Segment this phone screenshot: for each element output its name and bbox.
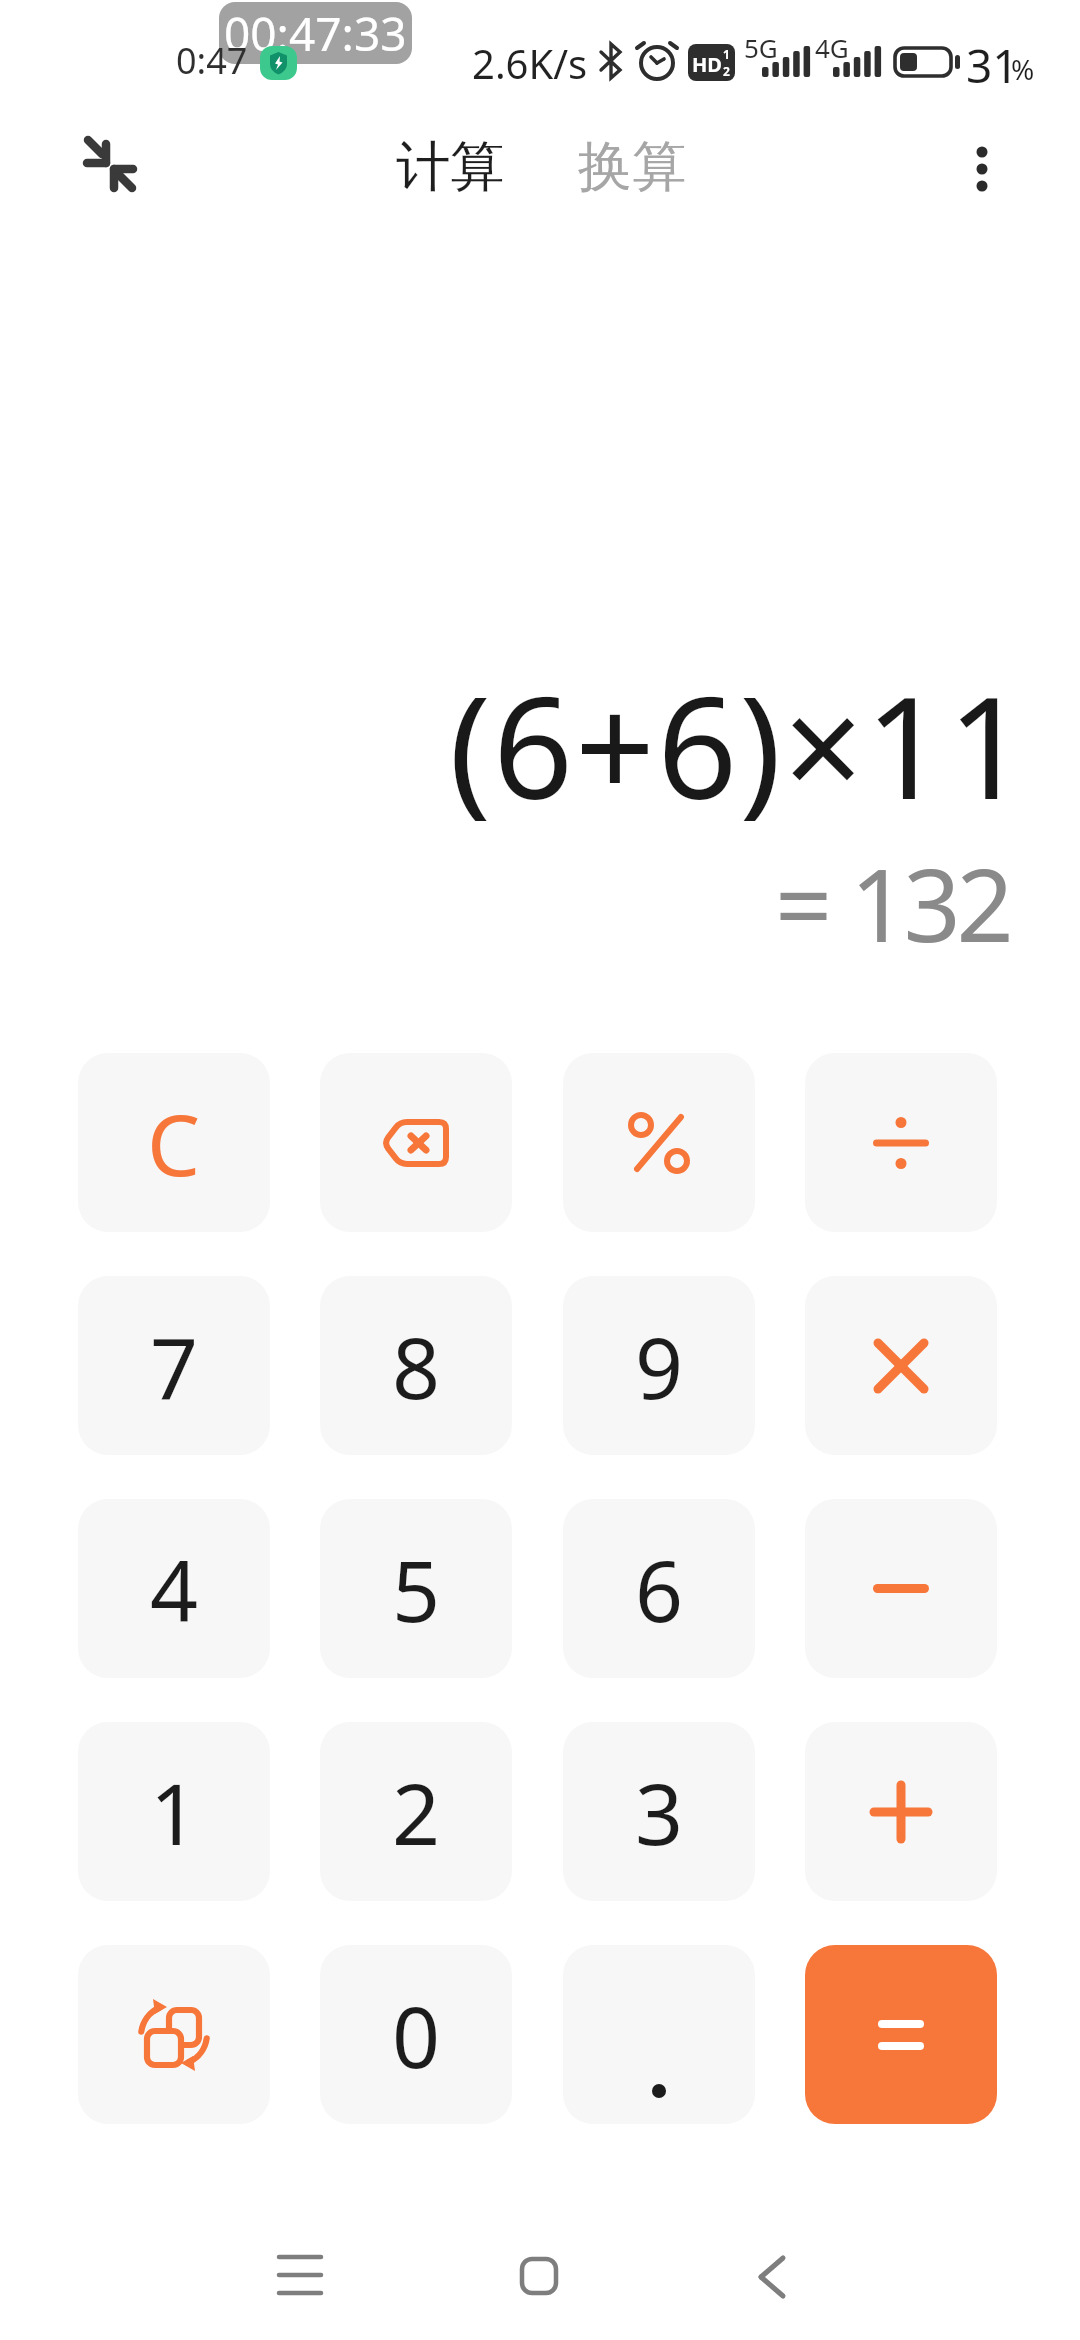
button[interactable]: 5 — [320, 1499, 512, 1678]
button[interactable]: 换算 — [562, 125, 702, 209]
button[interactable] — [563, 1945, 755, 2124]
button[interactable] — [805, 1053, 997, 1232]
staticText: 5G — [744, 30, 778, 65]
staticText: 换算 — [578, 133, 686, 201]
button[interactable] — [72, 122, 152, 202]
staticText: 00:47:33 — [224, 2, 407, 64]
staticText: 8 — [392, 1309, 441, 1423]
button[interactable]: 8 — [320, 1276, 512, 1455]
button[interactable] — [805, 1722, 997, 1901]
staticText: 31 — [966, 34, 1019, 97]
staticText: 计算 — [396, 133, 504, 201]
staticText: 3 — [635, 1755, 684, 1869]
staticText: 2.6K/s — [472, 36, 588, 90]
staticText: 5 — [392, 1532, 441, 1646]
staticText: 2 — [723, 63, 730, 79]
button[interactable]: 7 — [78, 1276, 270, 1455]
staticText: 6 — [635, 1532, 684, 1646]
button[interactable] — [805, 1276, 997, 1455]
button[interactable]: 0 — [320, 1945, 512, 2124]
staticText: 0 — [392, 1978, 441, 2092]
button[interactable] — [805, 1945, 997, 2124]
button[interactable]: 2 — [320, 1722, 512, 1901]
button[interactable] — [78, 1945, 270, 2124]
staticText: C — [147, 1086, 201, 1200]
staticText: HD — [692, 51, 722, 78]
staticText: 1 — [150, 1755, 199, 1869]
button[interactable]: C — [78, 1053, 270, 1232]
button[interactable] — [255, 2230, 345, 2320]
staticText: % — [1011, 50, 1035, 88]
button[interactable] — [805, 1499, 997, 1678]
button[interactable]: 6 — [563, 1499, 755, 1678]
button[interactable] — [950, 130, 1014, 210]
button[interactable]: 4 — [78, 1499, 270, 1678]
staticText: (6+6)×11 — [449, 649, 1030, 840]
button[interactable]: 计算 — [380, 125, 520, 209]
button[interactable] — [563, 1053, 755, 1232]
button[interactable]: 3 — [563, 1722, 755, 1901]
staticText: = 132 — [775, 835, 1010, 971]
button[interactable] — [735, 2230, 825, 2320]
staticText: 0:47 — [176, 36, 248, 85]
staticText: 2 — [392, 1755, 441, 1869]
button[interactable]: 1 — [78, 1722, 270, 1901]
staticText: 9 — [635, 1309, 684, 1423]
staticText: 4G — [815, 30, 849, 65]
staticText: 7 — [150, 1309, 199, 1423]
button[interactable] — [495, 2230, 585, 2320]
button[interactable]: 9 — [563, 1276, 755, 1455]
button[interactable] — [320, 1053, 512, 1232]
staticText: 1 — [723, 46, 730, 62]
staticText: 4 — [150, 1532, 199, 1646]
